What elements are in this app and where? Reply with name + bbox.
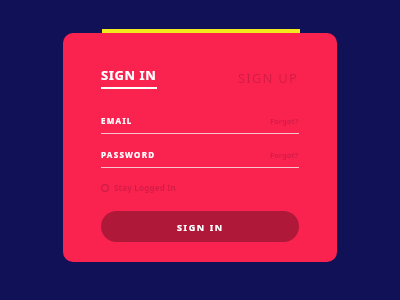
staticText: SIGN IN bbox=[177, 221, 224, 233]
staticText: SIGN IN bbox=[101, 66, 157, 84]
staticText: EMAIL bbox=[101, 115, 133, 126]
button[interactable]: SIGN UP bbox=[238, 69, 299, 87]
staticText: PASSWORD bbox=[101, 149, 156, 160]
staticText: Forgot? bbox=[270, 150, 299, 160]
button[interactable]: EMAIL bbox=[101, 115, 299, 134]
button[interactable]: SIGN IN bbox=[101, 211, 299, 242]
button[interactable]: SIGN IN bbox=[101, 66, 157, 89]
staticText: SIGN UP bbox=[238, 69, 299, 87]
button[interactable]: Forgot? bbox=[270, 116, 299, 126]
button[interactable]: Stay Logged In bbox=[101, 182, 176, 193]
button[interactable]: PASSWORD bbox=[101, 149, 299, 168]
staticText: Forgot? bbox=[270, 116, 299, 126]
staticText: Stay Logged In bbox=[114, 182, 176, 193]
button[interactable]: Forgot? bbox=[270, 150, 299, 160]
